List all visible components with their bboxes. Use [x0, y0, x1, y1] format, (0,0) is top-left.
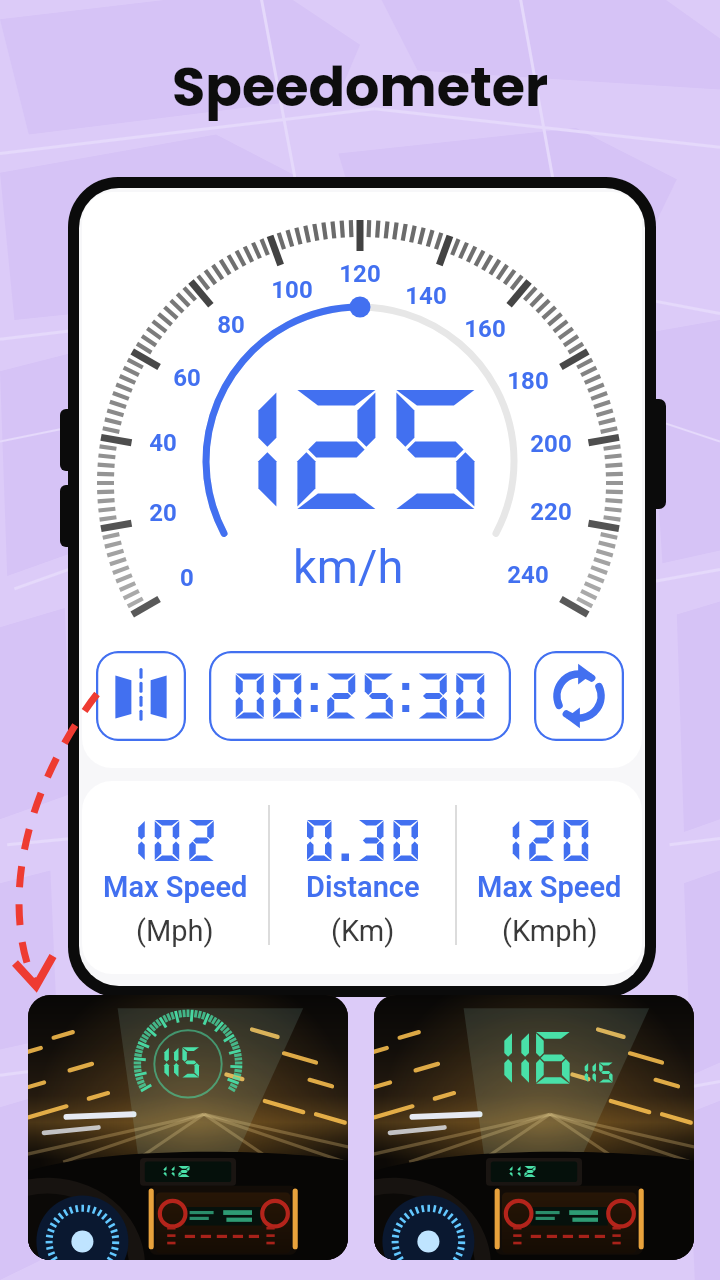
staticText: 140 — [400, 282, 452, 310]
staticText: 120 — [334, 260, 386, 288]
staticText: 220 — [525, 498, 577, 526]
staticText: (Kmph) — [502, 914, 598, 948]
button[interactable]: Max Speed — [457, 781, 642, 974]
staticText: 80 — [205, 311, 257, 339]
staticText: 240 — [502, 561, 554, 589]
button[interactable]: Reset — [534, 651, 624, 741]
staticText: 200 — [525, 430, 577, 458]
button[interactable] — [209, 651, 511, 741]
staticText: (Km) — [331, 914, 395, 948]
staticText: Max Speed — [103, 870, 248, 904]
staticText: 40 — [137, 429, 189, 457]
button[interactable]: Distance — [270, 781, 455, 974]
staticText: 180 — [502, 367, 554, 395]
staticText: 0 — [161, 564, 213, 592]
staticText: km/h — [293, 539, 404, 594]
button[interactable] — [374, 995, 694, 1260]
button[interactable] — [28, 995, 348, 1260]
staticText: (Mph) — [136, 914, 214, 948]
staticText: 20 — [137, 499, 189, 527]
button[interactable]: Road — [96, 651, 186, 741]
staticText: Distance — [306, 870, 420, 904]
staticText: Max Speed — [477, 870, 622, 904]
button[interactable]: Max Speed — [82, 781, 268, 974]
staticText: 100 — [266, 276, 318, 304]
staticText: Speedometer — [172, 49, 549, 125]
staticText: 60 — [161, 364, 213, 392]
staticText: 160 — [459, 315, 511, 343]
